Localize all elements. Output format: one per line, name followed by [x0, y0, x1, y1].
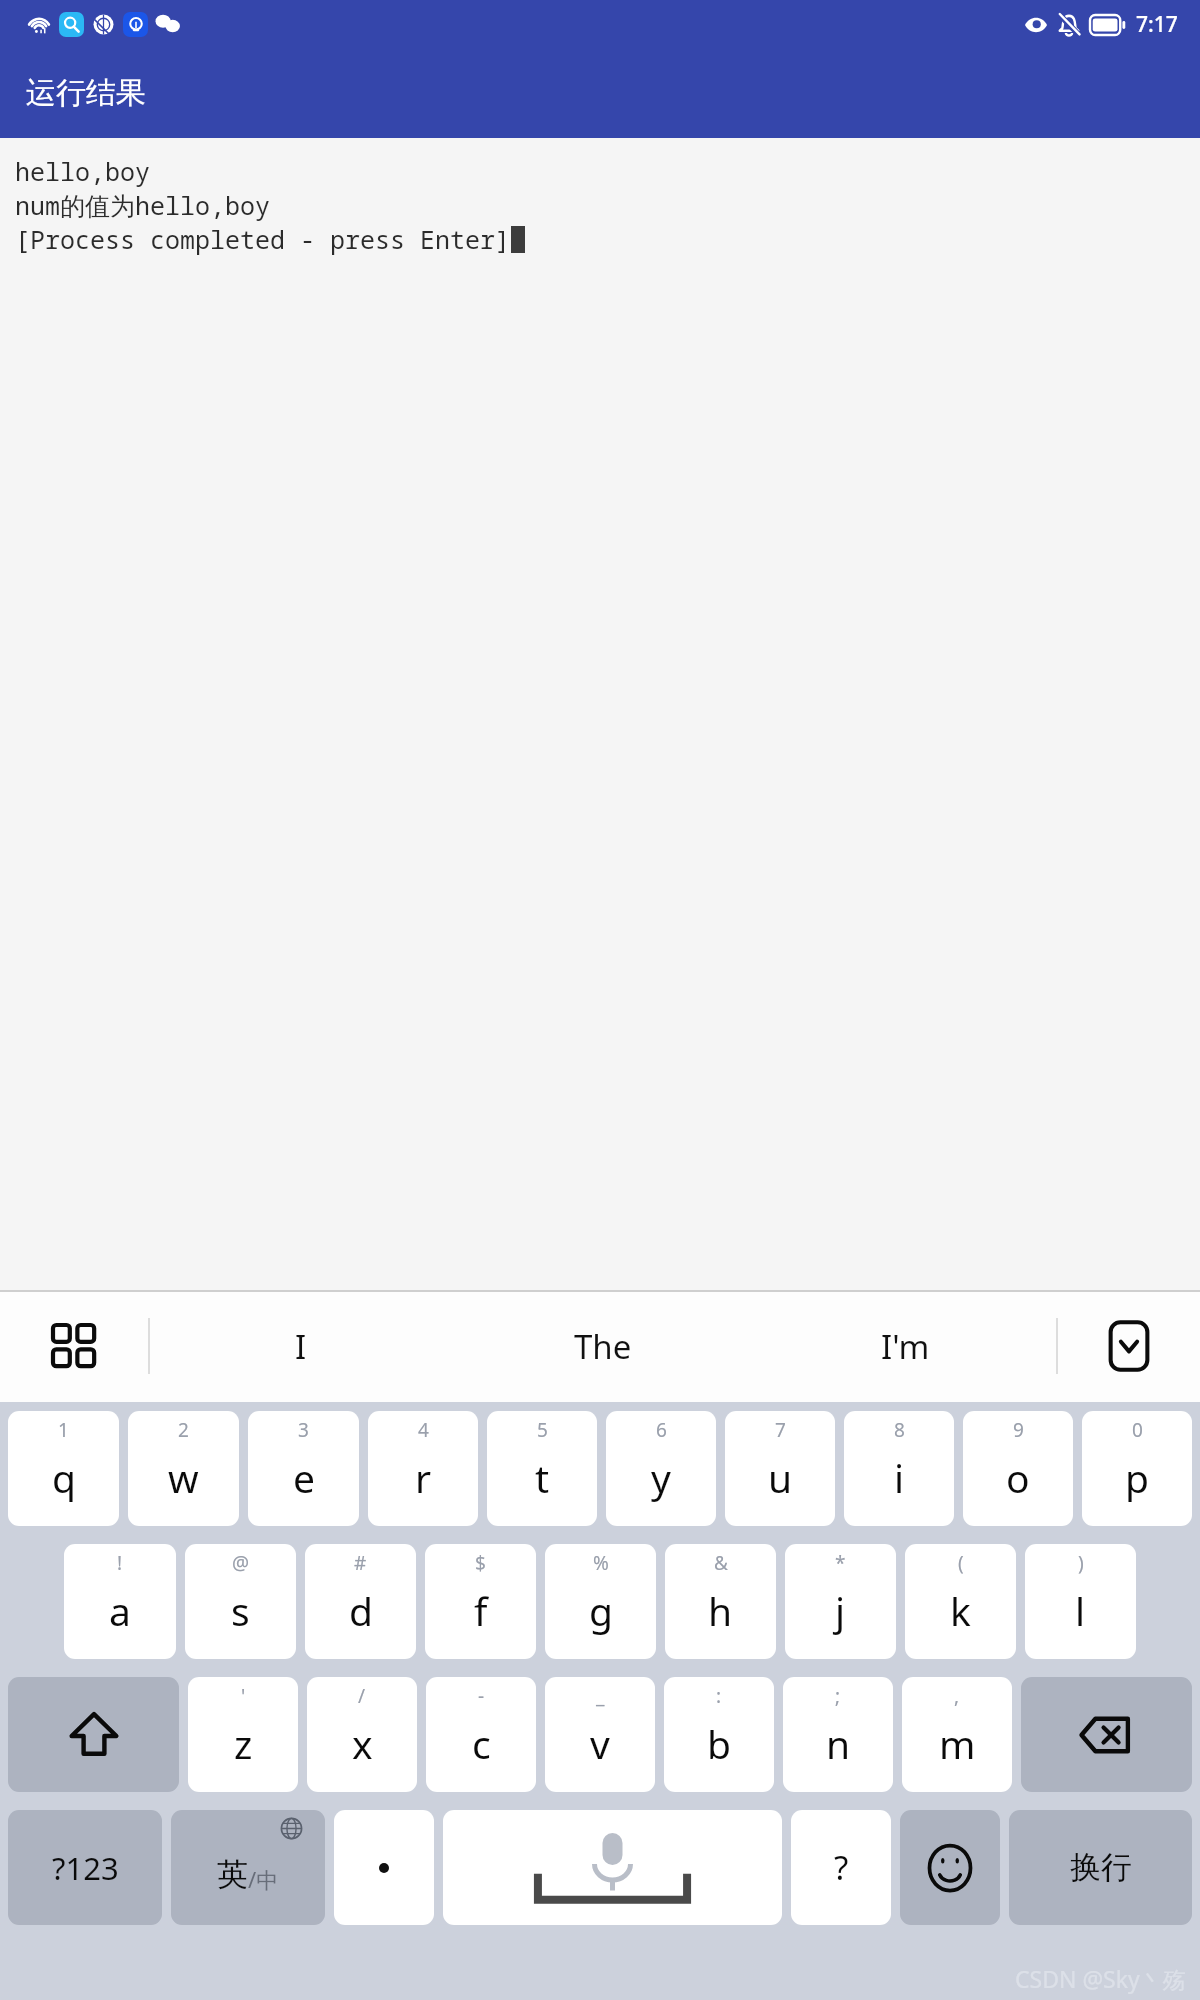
staticText: i [894, 1451, 905, 1504]
staticText: z [234, 1717, 253, 1770]
button[interactable]: 0 [1082, 1411, 1192, 1526]
staticText: 英 [217, 1855, 248, 1894]
button[interactable]: Shift [8, 1677, 179, 1792]
button[interactable]: I'm [754, 1290, 1056, 1402]
button[interactable]: Hide keyboard [1058, 1290, 1200, 1402]
button[interactable]: - [426, 1677, 536, 1792]
staticText: f [474, 1584, 488, 1637]
staticText: l [1075, 1584, 1086, 1637]
staticText: _ [596, 1683, 605, 1709]
staticText: a [109, 1584, 131, 1637]
staticText: [Process completed - press Enter] [15, 222, 511, 256]
button[interactable]: 8 [844, 1411, 954, 1526]
button[interactable]: Period [334, 1810, 434, 1925]
button[interactable]: % [545, 1544, 656, 1659]
staticText: c [472, 1717, 491, 1770]
staticText: 运行结果 [26, 74, 146, 112]
button[interactable]: 6 [606, 1411, 716, 1526]
staticText: 换行 [1070, 1848, 1132, 1887]
staticText: ! [117, 1550, 123, 1576]
staticText: 1 [58, 1417, 69, 1443]
button[interactable]: 7 [725, 1411, 835, 1526]
staticText: The [574, 1324, 632, 1369]
button[interactable]: 2 [128, 1411, 239, 1526]
button[interactable]: _ [545, 1677, 655, 1792]
staticText: CSDN @Sky丶殇 [1015, 1963, 1186, 1994]
staticText: w [168, 1451, 199, 1504]
button[interactable]: 3 [248, 1411, 359, 1526]
staticText: v [590, 1717, 610, 1770]
staticText: o [1006, 1451, 1030, 1504]
button[interactable]: Space [443, 1810, 782, 1925]
staticText: / [358, 1683, 366, 1709]
staticText: # [354, 1550, 367, 1576]
button[interactable]: @ [185, 1544, 296, 1659]
staticText: 2 [178, 1417, 189, 1443]
staticText: y [651, 1451, 671, 1504]
staticText: I'm [881, 1324, 930, 1369]
staticText: 6 [656, 1417, 667, 1443]
button[interactable]: Switch language [171, 1810, 325, 1925]
button[interactable]: & [665, 1544, 776, 1659]
button[interactable]: # [305, 1544, 416, 1659]
staticText: - [478, 1683, 485, 1709]
button[interactable]: Backspace [1021, 1677, 1192, 1792]
staticText: h [708, 1584, 733, 1637]
staticText: q [52, 1451, 76, 1504]
staticText: t [535, 1451, 550, 1504]
staticText: 0 [1132, 1417, 1143, 1443]
staticText: ) [1078, 1550, 1084, 1576]
staticText: % [593, 1550, 609, 1576]
button[interactable]: 4 [368, 1411, 478, 1526]
staticText: 7:17 [1136, 10, 1178, 39]
staticText: 5 [537, 1417, 548, 1443]
staticText: * [835, 1550, 846, 1576]
staticText: g [589, 1584, 613, 1637]
staticText: /中 [248, 1864, 279, 1894]
button[interactable]: The [452, 1290, 754, 1402]
staticText: ( [958, 1550, 964, 1576]
button[interactable]: 9 [963, 1411, 1073, 1526]
staticText: $ [475, 1550, 486, 1576]
button[interactable]: 换行 [1009, 1810, 1192, 1925]
button[interactable]: * [785, 1544, 896, 1659]
staticText: p [1125, 1451, 1149, 1504]
button[interactable]: I [150, 1290, 452, 1402]
staticText: 7 [775, 1417, 786, 1443]
button[interactable]: ' [188, 1677, 298, 1792]
button[interactable]: ?123 [8, 1810, 162, 1925]
staticText: k [950, 1584, 971, 1637]
button[interactable]: ! [64, 1544, 176, 1659]
staticText: n [826, 1717, 851, 1770]
button[interactable]: ( [905, 1544, 1016, 1659]
staticText: s [231, 1584, 250, 1637]
button[interactable]: : [664, 1677, 774, 1792]
button[interactable]: ; [783, 1677, 893, 1792]
staticText: 9 [1013, 1417, 1024, 1443]
button[interactable]: 5 [487, 1411, 597, 1526]
staticText: ; [835, 1683, 841, 1709]
staticText: 3 [298, 1417, 309, 1443]
button[interactable]: ) [1025, 1544, 1136, 1659]
staticText: u [768, 1451, 793, 1504]
staticText: b [707, 1717, 731, 1770]
button[interactable]: , [902, 1677, 1012, 1792]
staticText: e [293, 1451, 315, 1504]
staticText: 8 [894, 1417, 905, 1443]
button[interactable]: Keyboard options [0, 1290, 148, 1402]
staticText: 4 [418, 1417, 429, 1443]
staticText: @ [232, 1550, 250, 1576]
button[interactable]: 1 [8, 1411, 119, 1526]
button[interactable]: ? [791, 1810, 891, 1925]
button[interactable]: / [307, 1677, 417, 1792]
staticText: hello,boy [15, 154, 151, 188]
staticText: ?123 [52, 1847, 119, 1889]
staticText: num的值为hello,boy [15, 188, 271, 222]
staticText: x [352, 1717, 373, 1770]
staticText: : [716, 1683, 722, 1709]
button[interactable]: $ [425, 1544, 536, 1659]
staticText: & [714, 1550, 728, 1576]
staticText: j [835, 1584, 846, 1637]
staticText: ? [834, 1845, 849, 1890]
button[interactable]: Emoji [900, 1810, 1000, 1925]
